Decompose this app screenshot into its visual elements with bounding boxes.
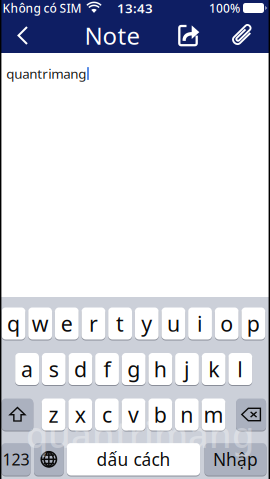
staticText: j xyxy=(184,355,190,383)
button[interactable]: b xyxy=(148,398,172,431)
staticText: e xyxy=(61,309,73,338)
staticText: c xyxy=(102,400,112,429)
staticText: y xyxy=(141,309,152,338)
button[interactable]: t xyxy=(108,307,132,340)
button[interactable]: v xyxy=(122,398,145,431)
button[interactable]: Share xyxy=(172,18,206,52)
button[interactable]: Delete xyxy=(236,398,266,431)
button[interactable]: f xyxy=(95,352,119,385)
button[interactable]: r xyxy=(81,307,105,340)
staticText: s xyxy=(49,355,59,383)
button[interactable]: q xyxy=(2,307,25,340)
button[interactable]: Next keyboard xyxy=(34,443,64,476)
button[interactable]: n xyxy=(175,398,199,431)
button[interactable]: s xyxy=(42,352,66,385)
button[interactable]: y xyxy=(135,307,159,340)
button[interactable]: m xyxy=(202,398,225,431)
staticText: b xyxy=(154,400,167,429)
button[interactable]: k xyxy=(202,352,225,385)
staticText: w xyxy=(32,309,49,338)
staticText: m xyxy=(203,400,223,429)
button[interactable]: Back xyxy=(6,18,40,52)
staticText: g xyxy=(127,355,140,383)
button[interactable]: Nhập xyxy=(204,443,266,476)
button[interactable]: l xyxy=(228,352,252,385)
staticText: n xyxy=(180,400,193,429)
staticText: f xyxy=(103,355,110,383)
button[interactable]: p xyxy=(241,307,265,340)
staticText: x xyxy=(75,400,86,429)
button[interactable]: dấu cách xyxy=(67,443,200,476)
button[interactable]: j xyxy=(175,352,199,385)
staticText: quantrimang xyxy=(26,410,254,458)
button[interactable]: d xyxy=(68,352,92,385)
staticText: z xyxy=(49,400,59,429)
button[interactable]: Attach xyxy=(225,18,259,52)
staticText: a xyxy=(21,355,33,383)
button[interactable]: u xyxy=(161,307,185,340)
staticText: quantrimang xyxy=(6,65,86,82)
staticText: 13:43 xyxy=(117,0,153,17)
staticText: o xyxy=(220,309,233,338)
staticText: v xyxy=(128,400,139,429)
button[interactable]: x xyxy=(68,398,92,431)
staticText: Nhập xyxy=(213,448,258,471)
button[interactable]: a xyxy=(15,352,39,385)
staticText: p xyxy=(247,309,260,338)
staticText: Không có SIM xyxy=(2,0,81,16)
button[interactable]: h xyxy=(148,352,172,385)
staticText: t xyxy=(116,309,124,338)
staticText: h xyxy=(154,355,167,383)
staticText: u xyxy=(167,309,180,338)
button[interactable]: Shift xyxy=(2,398,33,431)
button[interactable]: e xyxy=(55,307,79,340)
staticText: r xyxy=(89,309,98,338)
staticText: q xyxy=(7,309,20,338)
staticText: d xyxy=(74,355,87,383)
staticText: 123 xyxy=(2,449,29,470)
staticText: Note xyxy=(84,20,140,51)
staticText: k xyxy=(208,355,219,383)
button[interactable]: c xyxy=(95,398,119,431)
button[interactable]: w xyxy=(28,307,52,340)
button[interactable]: z xyxy=(42,398,65,431)
button[interactable]: 123 xyxy=(1,443,30,476)
button[interactable]: o xyxy=(215,307,239,340)
staticText: l xyxy=(237,355,243,383)
staticText: 100% xyxy=(209,0,240,16)
button[interactable]: g xyxy=(122,352,146,385)
button[interactable]: i xyxy=(188,307,212,340)
staticText: dấu cách xyxy=(96,448,170,471)
staticText: i xyxy=(197,309,203,338)
